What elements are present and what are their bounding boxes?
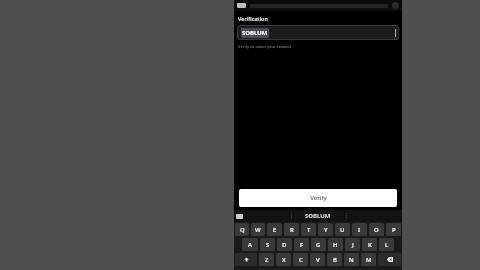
staticText: O xyxy=(374,226,379,234)
staticText: J xyxy=(352,241,354,249)
staticText: Q xyxy=(240,226,245,234)
button[interactable]: T xyxy=(301,223,316,236)
staticText: X xyxy=(282,256,286,264)
staticText: A xyxy=(248,241,252,249)
button[interactable]: Profile xyxy=(392,2,399,9)
button[interactable]: Z xyxy=(259,253,274,266)
button[interactable]: Back xyxy=(237,3,246,8)
button[interactable]: M xyxy=(361,253,376,266)
staticText: M xyxy=(366,256,372,264)
staticText: E xyxy=(273,226,277,234)
button[interactable]: S xyxy=(260,238,275,251)
button[interactable]: V xyxy=(310,253,325,266)
button[interactable]: Clipboard xyxy=(236,214,243,219)
button[interactable]: SOBLUM xyxy=(237,25,399,40)
button[interactable]: X xyxy=(276,253,291,266)
button[interactable]: U xyxy=(335,223,350,236)
staticText: Z xyxy=(265,256,269,264)
staticText: I xyxy=(358,226,361,234)
staticText: Y xyxy=(324,226,328,234)
button[interactable]: Shift xyxy=(235,253,257,266)
staticText: SOBLUM xyxy=(242,29,268,37)
staticText: G xyxy=(316,241,321,249)
staticText: Verify xyxy=(310,194,327,202)
staticText: Verification xyxy=(238,15,268,22)
button[interactable]: SOBLUM xyxy=(305,212,331,220)
staticText: Verify to claim your reward xyxy=(238,44,291,50)
button[interactable]: H xyxy=(328,238,343,251)
staticText: SOBLUM xyxy=(305,212,331,220)
staticText: L xyxy=(385,241,389,249)
staticText: V xyxy=(316,256,320,264)
staticText: N xyxy=(349,256,354,264)
staticText: B xyxy=(333,256,337,264)
button[interactable]: Q xyxy=(235,223,249,236)
staticText: U xyxy=(340,226,345,234)
button[interactable]: Y xyxy=(318,223,333,236)
staticText: D xyxy=(282,241,287,249)
staticText: F xyxy=(300,241,304,249)
button[interactable]: Backspace xyxy=(378,253,401,266)
staticText: H xyxy=(333,241,338,249)
staticText: R xyxy=(290,226,294,234)
staticText: W xyxy=(255,226,261,234)
staticText: S xyxy=(266,241,270,249)
button[interactable]: G xyxy=(311,238,326,251)
button[interactable]: I xyxy=(352,223,367,236)
staticText: P xyxy=(392,226,396,234)
button[interactable]: K xyxy=(362,238,377,251)
button[interactable]: N xyxy=(344,253,359,266)
button[interactable]: E xyxy=(267,223,282,236)
staticText: C xyxy=(299,256,303,264)
staticText: T xyxy=(307,226,311,234)
button[interactable]: R xyxy=(284,223,299,236)
button[interactable]: L xyxy=(379,238,394,251)
button[interactable]: W xyxy=(251,223,265,236)
button[interactable]: O xyxy=(369,223,384,236)
button[interactable]: D xyxy=(277,238,292,251)
button[interactable]: Verify xyxy=(239,189,397,207)
button[interactable]: J xyxy=(345,238,360,251)
button[interactable]: F xyxy=(294,238,309,251)
button[interactable]: P xyxy=(386,223,401,236)
staticText: K xyxy=(368,241,372,249)
button[interactable]: A xyxy=(242,238,258,251)
button[interactable]: B xyxy=(327,253,342,266)
button[interactable]: C xyxy=(293,253,308,266)
